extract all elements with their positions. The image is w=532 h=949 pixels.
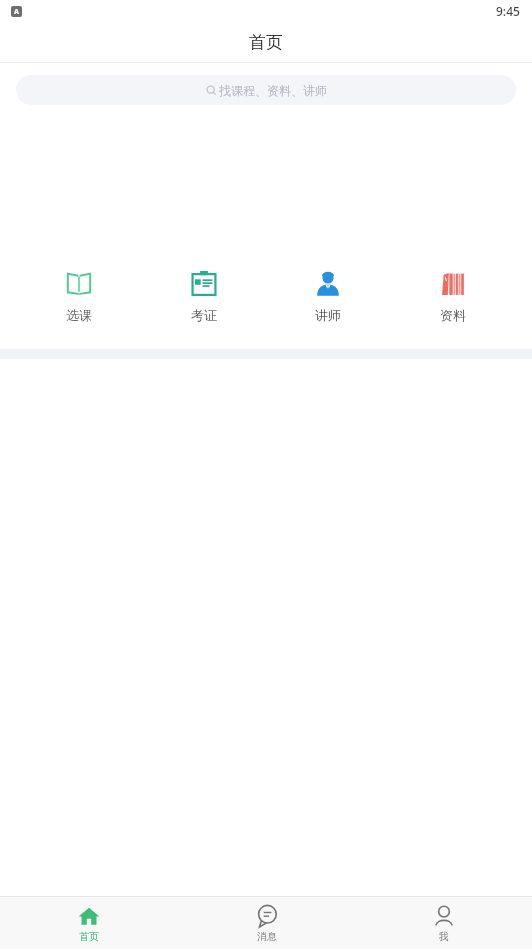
staticText: 考证 <box>191 307 217 323</box>
staticText: 我 <box>439 930 449 943</box>
staticText: 9:45 <box>496 3 520 19</box>
button[interactable]: 消息 <box>178 897 355 949</box>
staticText: A <box>14 7 19 17</box>
button[interactable]: 资料 <box>408 265 498 327</box>
button[interactable]: 讲师 <box>283 265 373 327</box>
button[interactable]: 首页 <box>0 897 178 949</box>
staticText: 讲师 <box>315 307 341 323</box>
staticText: 首页 <box>79 930 99 943</box>
staticText: 消息 <box>257 930 277 943</box>
button[interactable]: 找课程、资料、讲师 <box>16 75 516 105</box>
staticText: 选课 <box>66 307 92 323</box>
staticText: 找课程、资料、讲师 <box>219 83 327 98</box>
button[interactable]: 选课 <box>34 265 124 327</box>
staticText: 资料 <box>440 307 466 323</box>
staticText: 首页 <box>249 32 283 53</box>
button[interactable]: 我 <box>355 897 532 949</box>
button[interactable]: 考证 <box>159 265 249 327</box>
